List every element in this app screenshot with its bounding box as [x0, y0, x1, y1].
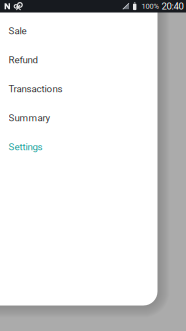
button[interactable]: Refund: [0, 45, 157, 74]
staticText: Sale: [8, 25, 26, 36]
staticText: Summary: [8, 112, 50, 123]
button[interactable]: Summary: [0, 103, 157, 132]
button[interactable]: Sale: [0, 16, 157, 45]
staticText: 100%: [142, 2, 159, 11]
staticText: Transactions: [8, 83, 62, 94]
staticText: Refund: [8, 54, 37, 65]
button[interactable]: Settings: [0, 132, 157, 161]
button[interactable]: Transactions: [0, 74, 157, 103]
staticText: 20:40: [162, 1, 184, 12]
staticText: Settings: [8, 141, 42, 152]
